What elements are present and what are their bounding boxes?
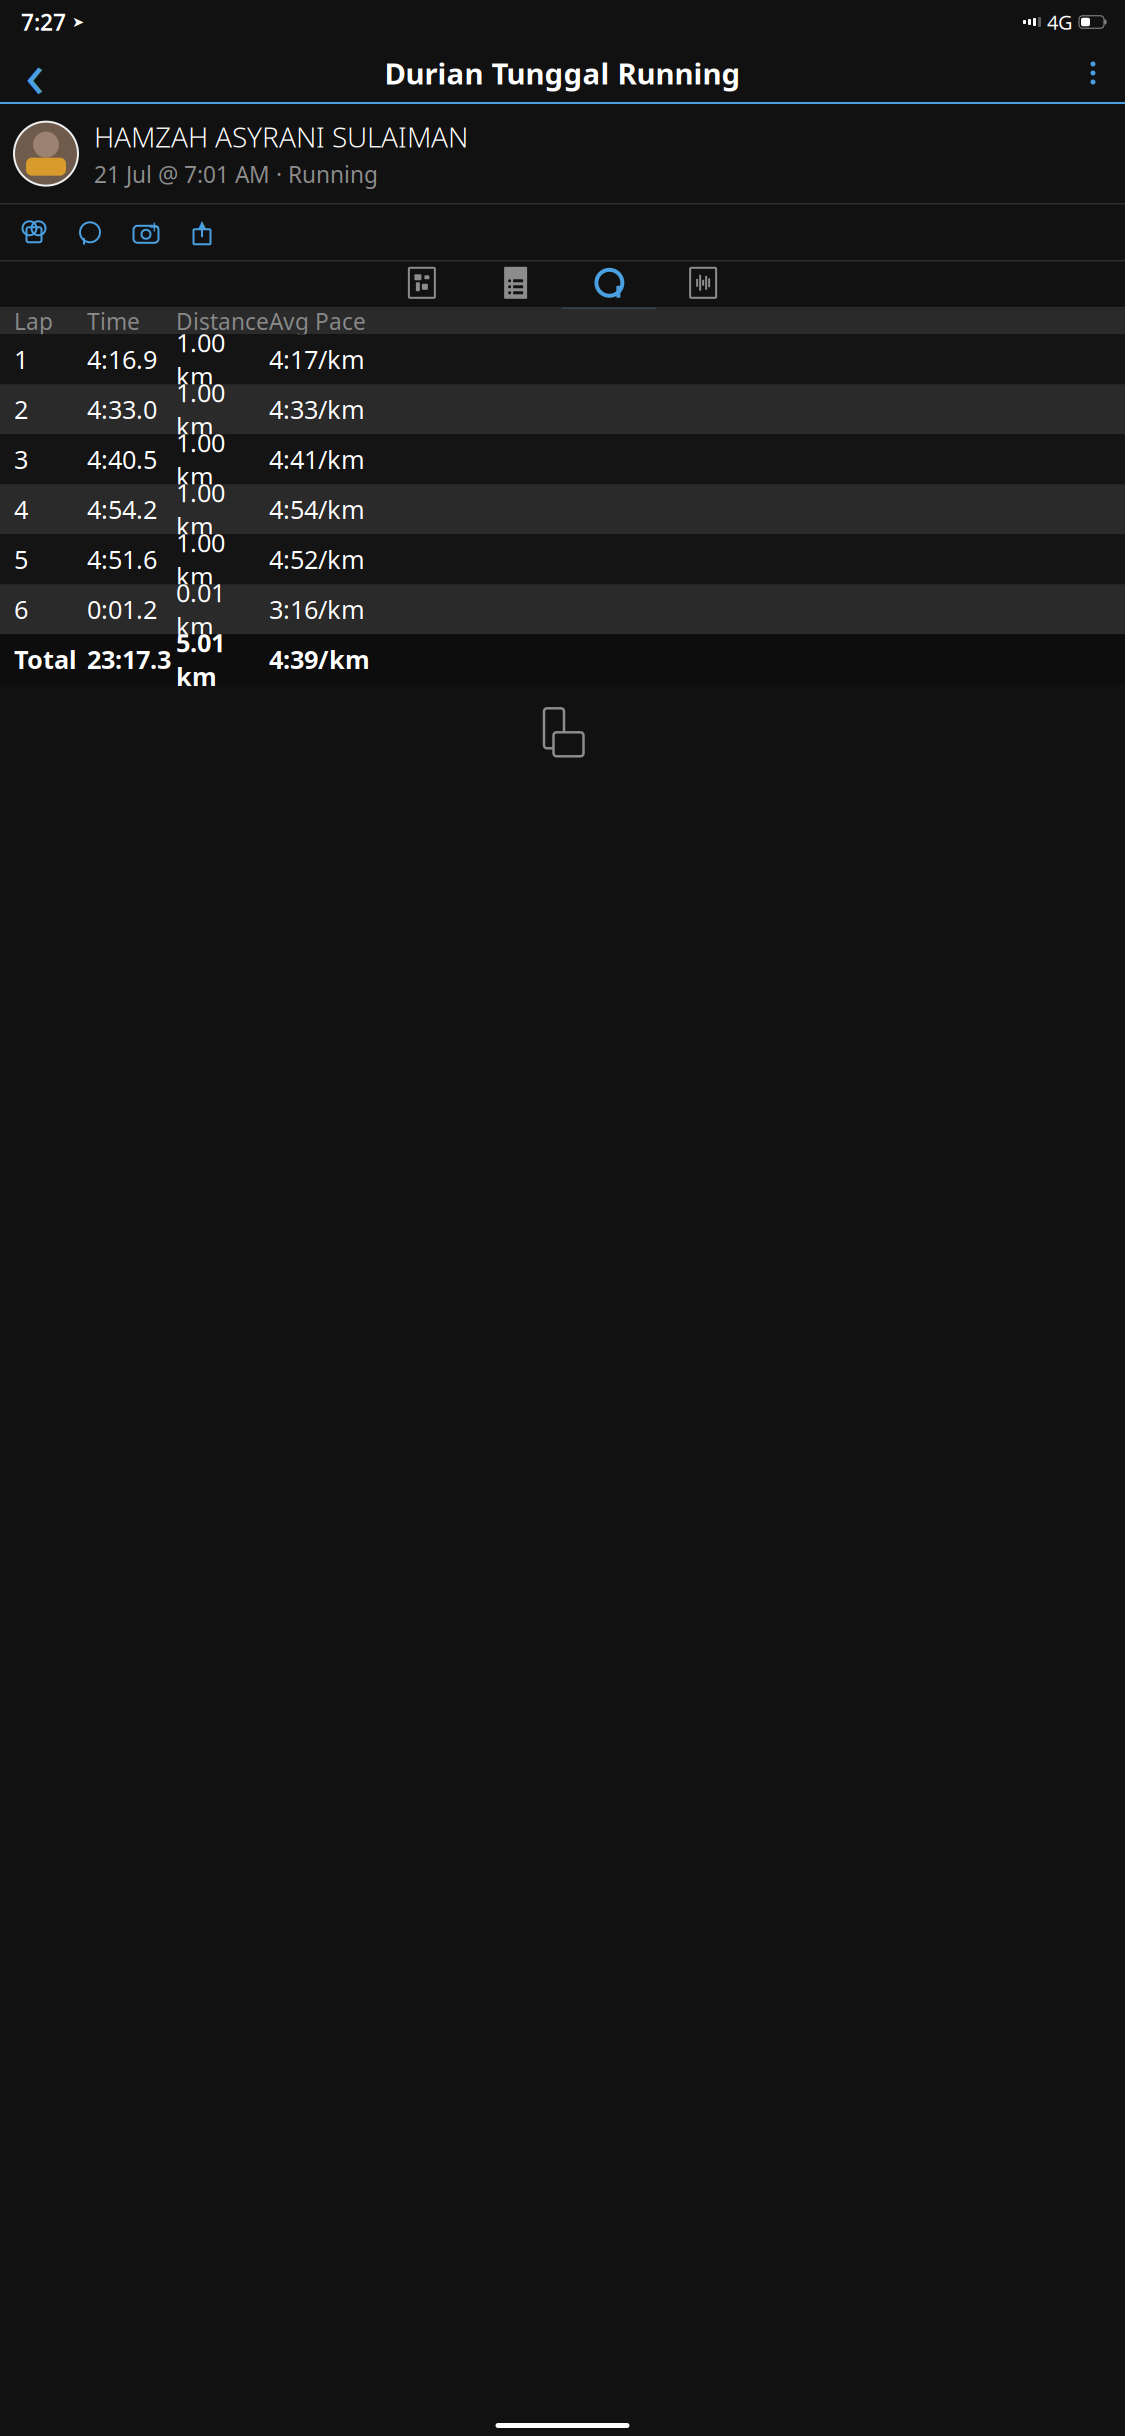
staticText: 4:33/km (269, 392, 365, 426)
staticText: 1.00 km (176, 526, 225, 593)
button[interactable]: HAMZAH ASYRANI SULAIMAN (0, 104, 1125, 203)
button[interactable]: Laps (562, 261, 656, 307)
staticText: 0:01.2 (87, 592, 157, 626)
staticText: Distance (176, 306, 269, 336)
staticText: 21 Jul @ 7:01 AM · Running (94, 159, 378, 189)
staticText: 3:16/km (269, 592, 365, 626)
button[interactable]: Analysis (656, 261, 750, 307)
button[interactable]: Share (174, 213, 230, 251)
staticText: Avg Pace (269, 306, 366, 336)
staticText: 6 (14, 592, 28, 626)
staticText: 4:52/km (269, 542, 365, 576)
staticText: 4:41/km (269, 442, 365, 476)
staticText: 4:33.0 (87, 392, 157, 426)
staticText: 0.01 km (176, 576, 225, 643)
button[interactable]: Back (8, 49, 62, 97)
staticText: 5.01 km (176, 626, 225, 693)
staticText: 1.00 km (176, 426, 225, 493)
staticText: 7:27 (21, 7, 66, 37)
staticText: ‹ (25, 30, 45, 115)
staticText: 1.00 km (176, 326, 225, 393)
staticText: ➤ (72, 14, 84, 30)
staticText: 4 (14, 492, 28, 526)
staticText: 4G (1047, 9, 1073, 35)
button[interactable]: Details (469, 261, 563, 307)
staticText: 4:54.2 (87, 492, 157, 526)
staticText: ⤷ (566, 726, 581, 752)
button[interactable]: More options (1069, 49, 1117, 97)
staticText: 4:51.6 (87, 542, 157, 576)
staticText: Lap (14, 306, 53, 336)
staticText: 1.00 km (176, 376, 225, 443)
staticText: 3 (14, 442, 28, 476)
staticText: 1 (14, 342, 28, 376)
staticText: 5 (14, 542, 28, 576)
staticText: 2 (14, 392, 28, 426)
staticText: Durian Tunggal Running (384, 53, 740, 92)
button[interactable]: Add photo (118, 213, 174, 251)
staticText: 4:40.5 (87, 442, 157, 476)
staticText: + (149, 214, 160, 239)
staticText: 4:54/km (269, 492, 365, 526)
staticText: ▲ (198, 218, 206, 230)
staticText: 4:16.9 (87, 342, 157, 376)
staticText: Total (14, 642, 77, 676)
staticText: Time (87, 306, 140, 336)
button[interactable]: Map (375, 261, 469, 307)
button[interactable]: Comment (62, 213, 118, 251)
staticText: 4:39/km (269, 642, 370, 676)
staticText: 23:17.3 (87, 642, 171, 676)
staticText: HAMZAH ASYRANI SULAIMAN (94, 118, 468, 155)
staticText: 1.00 km (176, 476, 225, 543)
staticText: 4:17/km (269, 342, 365, 376)
button[interactable]: Like (6, 213, 62, 251)
